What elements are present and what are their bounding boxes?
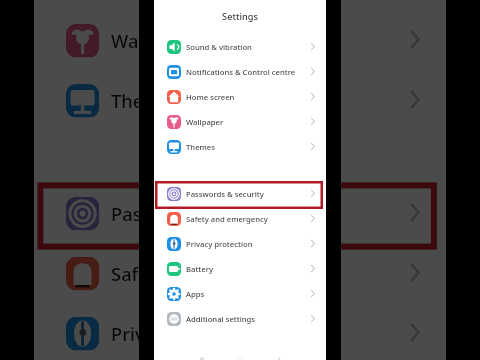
staticText: Wallpaper <box>111 29 201 53</box>
staticText: Privacy protection <box>186 239 253 249</box>
button[interactable]: Privacy protection <box>154 231 326 256</box>
button[interactable]: Apps <box>154 281 326 306</box>
staticText: Settings <box>222 10 258 23</box>
button[interactable]: Safety and emergency <box>154 206 326 231</box>
staticText: Home screen <box>186 92 235 102</box>
staticText: Battery <box>186 264 214 274</box>
button[interactable]: Battery <box>154 256 326 281</box>
staticText: Themes <box>111 89 180 113</box>
button[interactable]: Wallpaper <box>154 109 326 134</box>
staticText: Notifications & Control centre <box>186 67 296 77</box>
button[interactable]: Back <box>271 351 287 360</box>
staticText: Safety and emergency <box>186 214 268 224</box>
button[interactable]: Themes <box>154 134 326 159</box>
button[interactable]: Notifications & Control centre <box>154 59 326 84</box>
button[interactable]: Passwords & security <box>154 181 326 206</box>
staticText: Sound & vibration <box>186 42 252 52</box>
button[interactable]: Home screen <box>154 84 326 109</box>
button[interactable]: Additional settings <box>154 306 326 331</box>
staticText: Additional settings <box>186 314 256 324</box>
staticText: Passwords & security <box>186 189 264 199</box>
staticText: Passwords & security <box>111 202 297 226</box>
staticText: Themes <box>186 142 215 152</box>
staticText: Apps <box>186 289 205 299</box>
staticText: Safety and emergency <box>111 262 306 286</box>
staticText: Privacy protection <box>111 322 270 346</box>
staticText: Wallpaper <box>186 117 224 127</box>
button[interactable]: Recent apps <box>194 351 210 360</box>
button[interactable]: Sound & vibration <box>154 34 326 59</box>
button[interactable]: Home <box>232 351 248 360</box>
